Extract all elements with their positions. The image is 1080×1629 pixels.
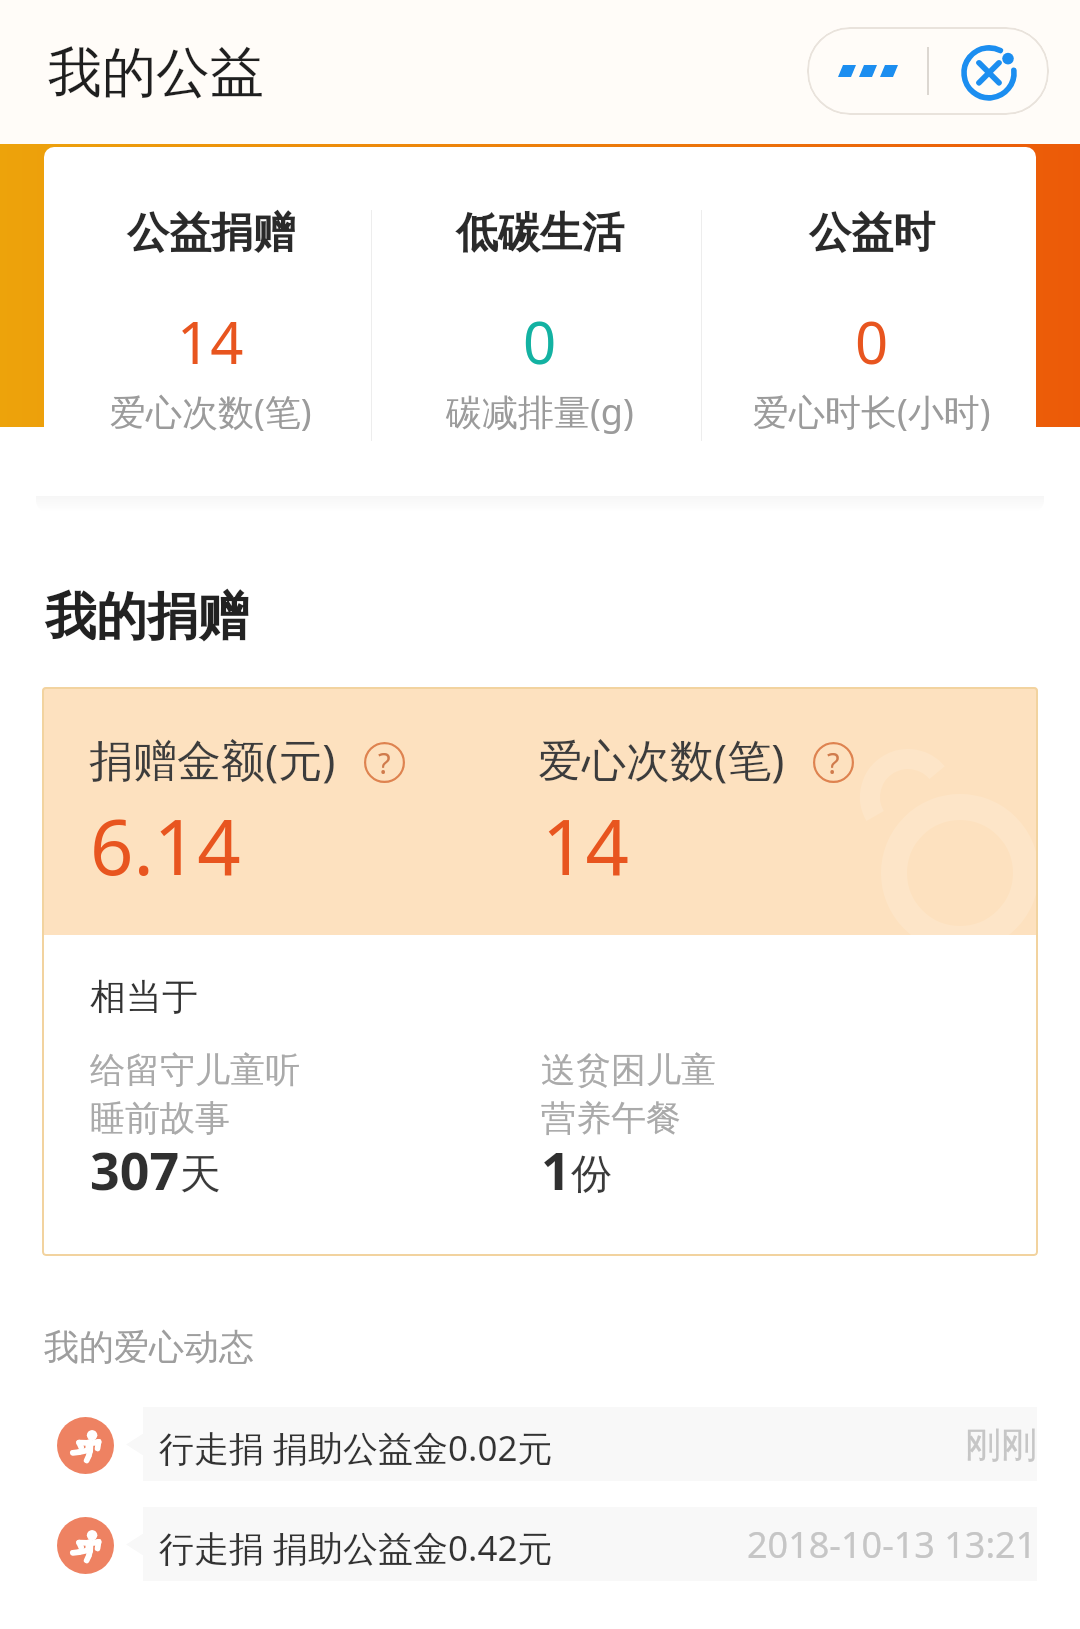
staticText: 1 xyxy=(541,1134,571,1205)
staticText: 给留守儿童听 xyxy=(90,1048,300,1092)
staticText: 相当于 xyxy=(90,974,198,1019)
button[interactable]: 公益捐赠 xyxy=(44,147,371,496)
button[interactable]: Close mini program xyxy=(929,27,1049,115)
staticText: 睡前故事 xyxy=(90,1096,230,1140)
staticText: 送贫困儿童 xyxy=(541,1048,716,1092)
staticText: 2018-10-13 13:21 xyxy=(747,1520,1037,1569)
staticText: 14 xyxy=(177,302,244,381)
staticText: 行走捐 捐助公益金0.42元 xyxy=(159,1524,553,1572)
staticText: 爱心次数(笔) xyxy=(538,729,785,789)
staticText: ? xyxy=(378,743,391,782)
staticText: 我的捐赠 xyxy=(45,585,249,649)
staticText: 14 xyxy=(542,794,629,898)
staticText: 低碳生活 xyxy=(456,207,624,260)
button[interactable]: More options xyxy=(807,27,927,115)
staticText: 份 xyxy=(571,1149,612,1201)
staticText: 0 xyxy=(523,302,557,381)
staticText: 爱心次数(笔) xyxy=(110,387,312,436)
staticText: 爱心时长(小时) xyxy=(753,387,991,436)
staticText: 6.14 xyxy=(90,794,241,898)
staticText: 我的爱心动态 xyxy=(44,1325,254,1369)
button[interactable]: 公益时 xyxy=(702,147,1036,496)
staticText: 碳减排量(g) xyxy=(446,387,634,436)
staticText: 公益时 xyxy=(809,207,935,260)
staticText: 0 xyxy=(855,302,889,381)
button[interactable]: Help xyxy=(813,742,854,783)
staticText: ? xyxy=(827,743,840,782)
staticText: 行走捐 捐助公益金0.02元 xyxy=(159,1424,553,1472)
staticText: 我的公益 xyxy=(48,39,264,107)
button[interactable]: Help xyxy=(364,742,405,783)
staticText: 营养午餐 xyxy=(541,1096,681,1140)
staticText: 捐赠金额(元) xyxy=(89,729,336,789)
button[interactable]: 低碳生活 xyxy=(372,147,701,496)
staticText: 公益捐赠 xyxy=(127,207,295,260)
button[interactable]: 行走捐 捐助公益金0.02元 xyxy=(0,1407,1080,1481)
button[interactable]: 行走捐 捐助公益金0.42元 xyxy=(0,1507,1080,1581)
staticText: 307 xyxy=(90,1134,180,1205)
staticText: 天 xyxy=(180,1149,221,1201)
staticText: 刚刚 xyxy=(965,1422,1037,1467)
